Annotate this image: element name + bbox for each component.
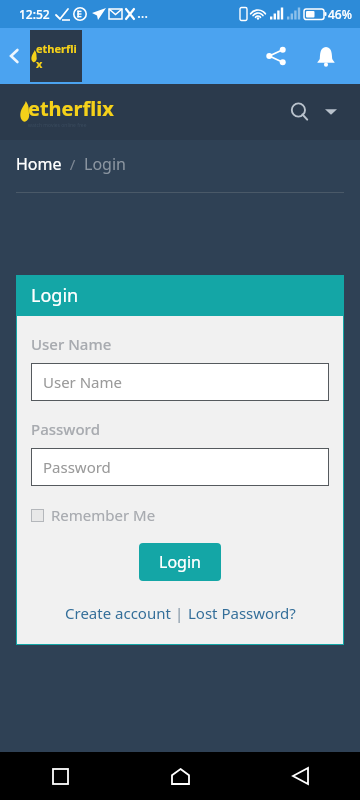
button[interactable]: Create account <box>65 603 171 623</box>
button[interactable]: Recent apps <box>0 752 120 800</box>
button[interactable]: Lost Password? <box>188 603 296 623</box>
button[interactable]: Remember Me <box>31 505 156 525</box>
button[interactable]: Search <box>282 94 318 130</box>
staticText: Remember Me <box>51 505 156 525</box>
button[interactable]: Share <box>254 34 298 78</box>
button[interactable]: etherflix home <box>18 95 119 129</box>
button[interactable]: Password <box>31 448 329 486</box>
button[interactable]: Login <box>139 543 221 581</box>
button[interactable]: Menu <box>318 99 344 125</box>
staticText: Password <box>31 419 100 439</box>
staticText: / <box>62 154 84 174</box>
staticText: 46% <box>328 6 352 22</box>
button[interactable]: Home <box>120 752 240 800</box>
staticText: 12:52 <box>19 6 50 22</box>
staticText: User Name <box>43 372 123 392</box>
staticText: Login <box>31 283 79 308</box>
button[interactable]: User Name <box>31 363 329 401</box>
button[interactable]: Back <box>240 752 360 800</box>
staticText: etherflix <box>28 95 114 122</box>
button[interactable]: Home <box>16 153 62 175</box>
button[interactable]: Back <box>0 41 30 71</box>
staticText: Password <box>43 457 111 477</box>
staticText: Login <box>159 551 201 573</box>
staticText: etherflix <box>36 41 79 71</box>
staticText: User Name <box>31 334 112 354</box>
staticText: watch movies online free <box>28 122 87 129</box>
button[interactable]: etherflix <box>30 30 82 82</box>
staticText: | <box>171 603 188 623</box>
staticText: Login <box>84 153 126 175</box>
button[interactable]: Notifications <box>304 34 348 78</box>
